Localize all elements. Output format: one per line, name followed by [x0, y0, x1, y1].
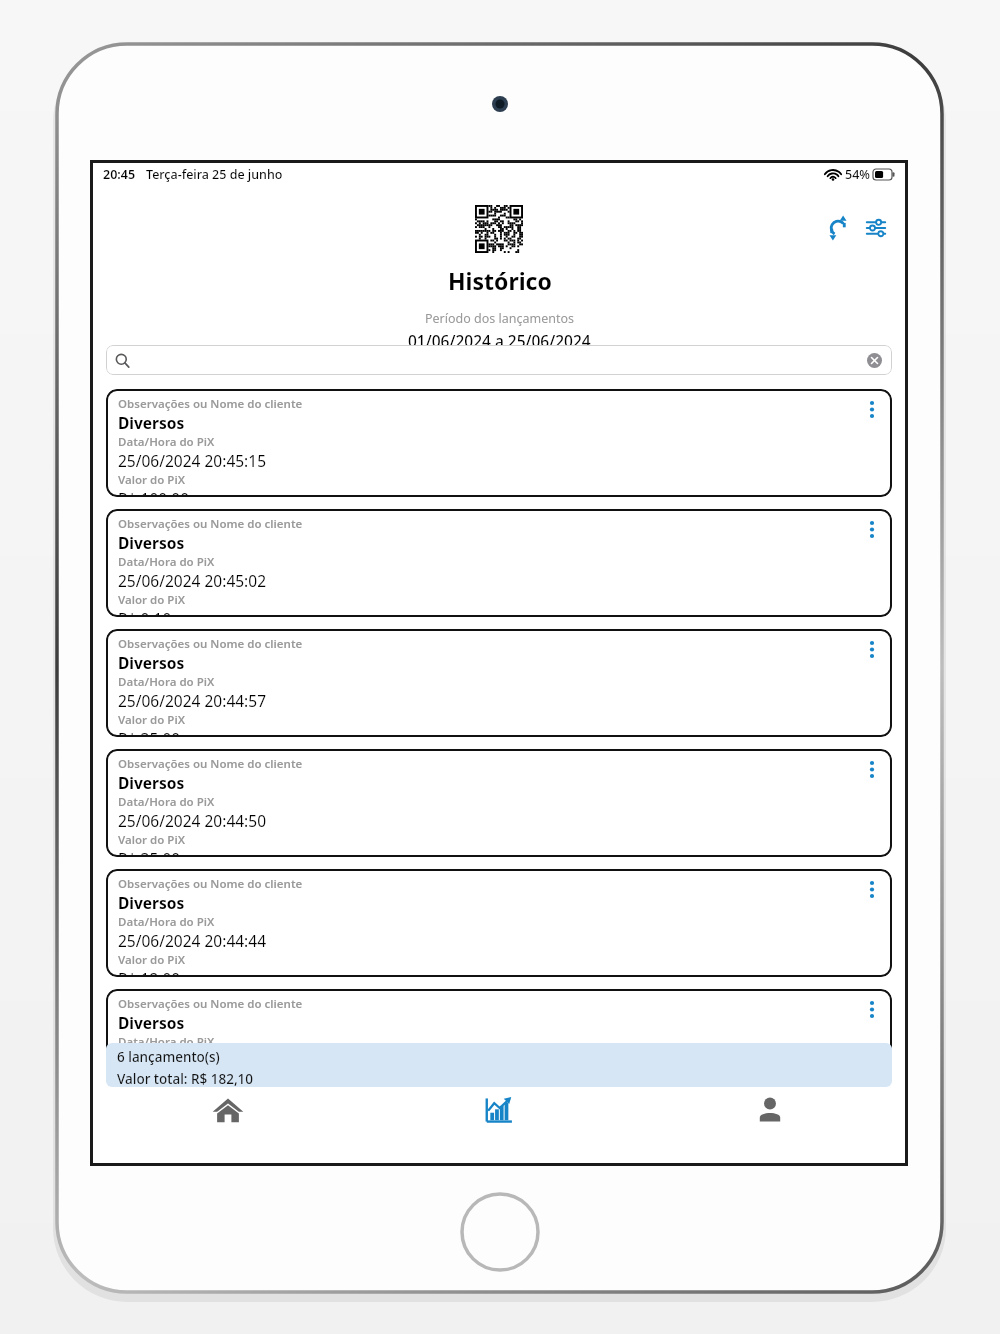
staticText: Observações ou Nome do cliente	[118, 756, 303, 772]
staticText: R$ 12,00	[118, 968, 181, 977]
button[interactable]: Atualizar	[823, 213, 853, 243]
button[interactable]: Filtros	[861, 213, 891, 243]
button[interactable]: Limpar busca	[106, 345, 892, 375]
button[interactable]: Observações ou Nome do cliente	[106, 629, 892, 737]
staticText: Observações ou Nome do cliente	[118, 636, 303, 652]
staticText: Observações ou Nome do cliente	[118, 396, 303, 412]
button[interactable]: Mais opções	[860, 397, 884, 421]
staticText: 54%	[845, 166, 870, 183]
staticText: Observações ou Nome do cliente	[118, 516, 303, 532]
button[interactable]: QR code	[475, 205, 523, 253]
staticText: Valor do PiX	[118, 712, 186, 728]
staticText: R$ 35,00	[118, 848, 181, 857]
staticText: Observações ou Nome do cliente	[118, 876, 303, 892]
staticText: 25/06/2024 20:44:57	[118, 690, 266, 711]
button[interactable]: Mais opções	[860, 517, 884, 541]
staticText: Valor do PiX	[118, 832, 186, 848]
staticText: R$ 0,10	[118, 608, 172, 617]
staticText: Diversos	[118, 1012, 185, 1033]
staticText: Diversos	[118, 412, 185, 433]
staticText: 01/06/2024 a 25/06/2024	[408, 330, 591, 351]
button[interactable]: 6 lançamento(s)	[106, 1043, 892, 1087]
button[interactable]: Mais opções	[860, 997, 884, 1021]
staticText: Diversos	[118, 892, 185, 913]
staticText: Diversos	[118, 532, 185, 553]
staticText: Data/Hora do PiX	[118, 914, 215, 930]
button[interactable]: Início	[93, 1087, 363, 1147]
button[interactable]: Observações ou Nome do cliente	[106, 389, 892, 497]
staticText: R$ 35,00	[118, 728, 181, 737]
button[interactable]: Relatórios	[363, 1087, 634, 1147]
staticText: 25/06/2024 20:44:30	[118, 1050, 266, 1057]
staticText: Valor do PiX	[118, 952, 186, 968]
staticText: Terça-feira 25 de junho	[146, 166, 283, 183]
staticText: 25/06/2024 20:45:02	[118, 570, 266, 591]
button[interactable]: Limpar busca	[865, 351, 883, 369]
button[interactable]: Observações ou Nome do cliente	[106, 989, 892, 1057]
staticText: 20:45	[103, 166, 136, 183]
staticText: Histórico	[448, 265, 552, 296]
button[interactable]: Observações ou Nome do cliente	[106, 749, 892, 857]
button[interactable]: Mais opções	[860, 637, 884, 661]
staticText: Período dos lançamentos	[425, 310, 575, 327]
staticText: Valor total: R$ 182,10	[117, 1070, 254, 1087]
staticText: Observações ou Nome do cliente	[118, 996, 303, 1012]
button[interactable]: Observações ou Nome do cliente	[106, 869, 892, 977]
staticText: Data/Hora do PiX	[118, 674, 215, 690]
staticText: 25/06/2024 20:44:50	[118, 810, 266, 831]
staticText: Data/Hora do PiX	[118, 434, 215, 450]
staticText: Diversos	[118, 772, 185, 793]
button[interactable]: Mais opções	[860, 877, 884, 901]
button[interactable]: Observações ou Nome do cliente	[106, 509, 892, 617]
staticText: Valor do PiX	[118, 472, 186, 488]
staticText: 25/06/2024 20:45:15	[118, 450, 266, 471]
staticText: Data/Hora do PiX	[118, 794, 215, 810]
button[interactable]: Perfil	[634, 1087, 905, 1147]
staticText: Data/Hora do PiX	[118, 554, 215, 570]
staticText: R$ 100,00	[118, 488, 190, 497]
staticText: Valor do PiX	[118, 592, 186, 608]
button[interactable]: Mais opções	[860, 757, 884, 781]
staticText: 25/06/2024 20:44:44	[118, 930, 266, 951]
staticText: Data/Hora do PiX	[118, 1034, 215, 1050]
staticText: 6 lançamento(s)	[117, 1048, 220, 1066]
staticText: Diversos	[118, 652, 185, 673]
